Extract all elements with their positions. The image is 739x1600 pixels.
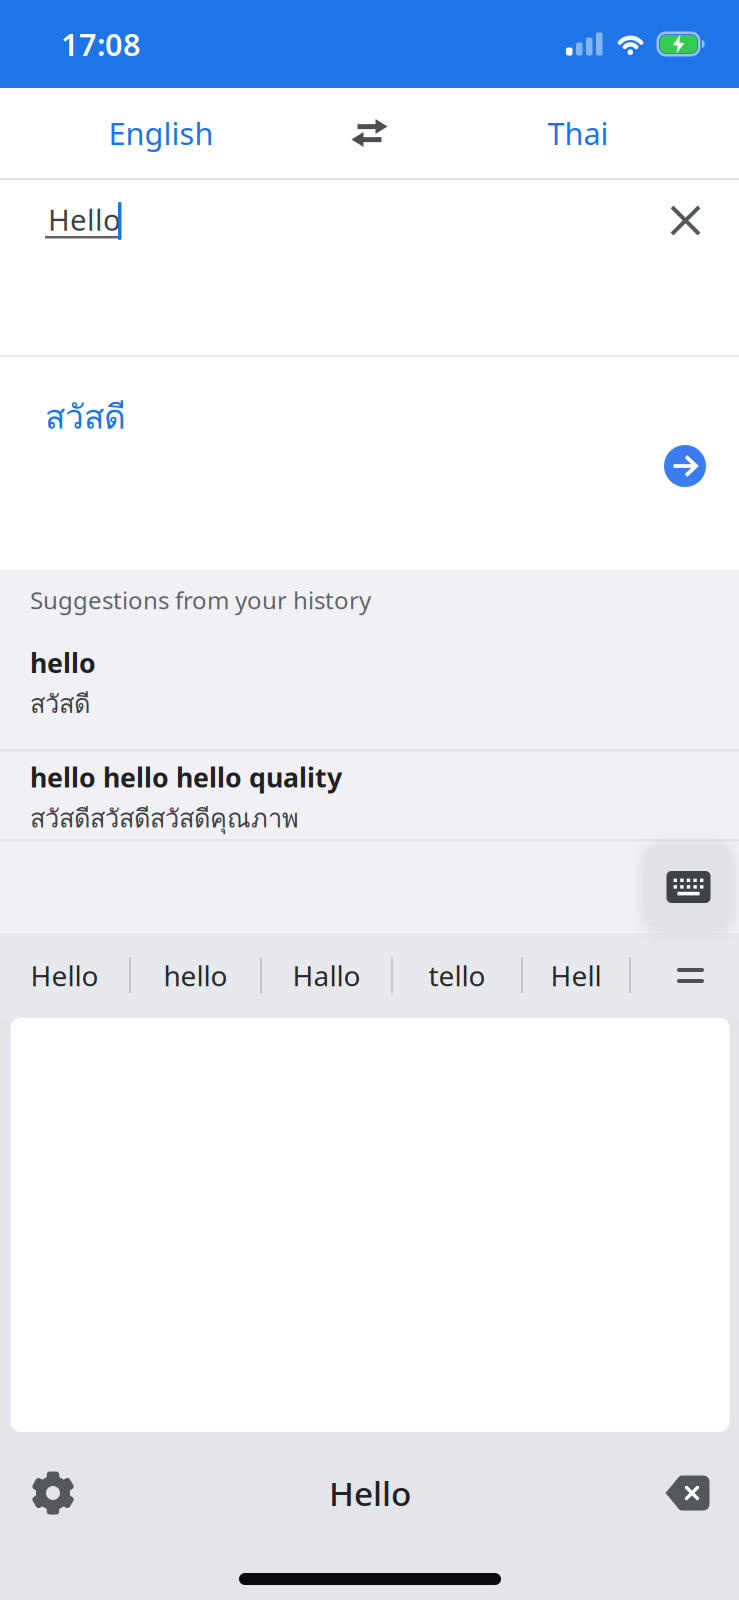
button[interactable]: Thai <box>417 88 739 178</box>
button[interactable]: English <box>0 88 322 178</box>
button[interactable]: Keyboard settings <box>31 1471 74 1514</box>
button[interactable]: hello <box>131 933 260 1018</box>
staticText: 17:08 <box>61 24 141 64</box>
button[interactable]: Translate <box>664 445 706 487</box>
staticText: Thai <box>547 113 608 153</box>
staticText: Hello <box>48 200 121 239</box>
button[interactable]: hello hello hello quality <box>0 751 739 839</box>
button[interactable]: Switch keyboard <box>645 845 732 929</box>
staticText: Hell <box>550 957 601 994</box>
button[interactable]: Hello <box>0 933 129 1018</box>
staticText: สวัสดี <box>30 684 90 724</box>
button[interactable]: Hallo <box>262 933 391 1018</box>
staticText: English <box>108 113 213 153</box>
staticText: hello <box>30 645 96 680</box>
staticText: สวัสดี <box>45 391 126 443</box>
staticText: Hello <box>30 957 98 994</box>
staticText: tello <box>428 957 485 994</box>
button[interactable]: Hell <box>523 933 629 1018</box>
staticText: Hello <box>329 1471 411 1515</box>
staticText: Suggestions from your history <box>30 584 371 616</box>
staticText: hello hello hello quality <box>30 759 342 795</box>
button[interactable]: Delete <box>665 1475 709 1510</box>
button[interactable]: hello <box>0 616 739 750</box>
button[interactable]: Clear text <box>671 180 739 235</box>
button[interactable]: Swap languages <box>322 88 417 178</box>
staticText: Hallo <box>292 957 360 994</box>
staticText: สวัสดีสวัสดีสวัสดีคุณภาพ <box>30 799 299 838</box>
button[interactable]: More candidates <box>631 933 739 1018</box>
button[interactable]: tello <box>393 933 521 1018</box>
staticText: hello <box>163 957 227 994</box>
